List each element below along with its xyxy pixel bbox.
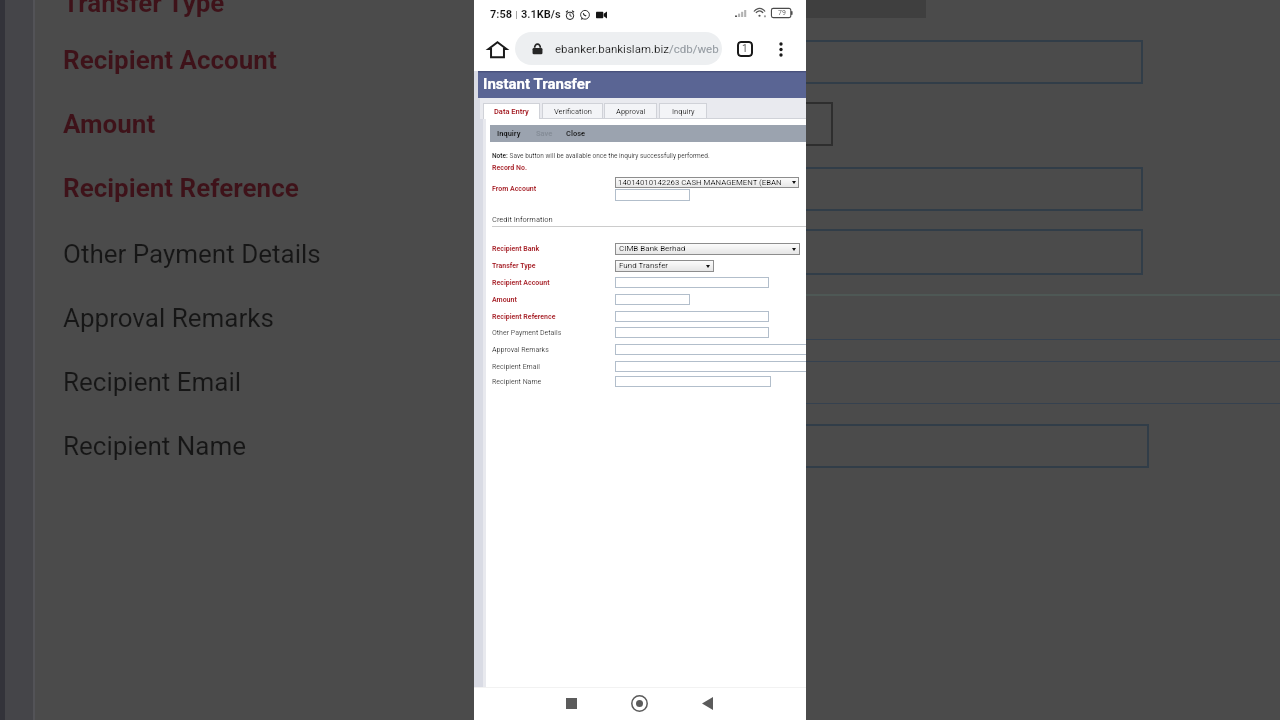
staticText: Recipient Reference [63, 173, 299, 203]
button[interactable]: Back [687, 687, 728, 720]
staticText: Approval Remarks [63, 303, 274, 333]
button[interactable]: Verification [542, 103, 603, 119]
staticText: Recipient Account [492, 279, 550, 287]
button[interactable] [615, 361, 806, 372]
staticText: Fund Transfer [619, 261, 669, 270]
button[interactable]: Inquiry [659, 103, 707, 119]
staticText: Recipient Account [63, 45, 277, 75]
button[interactable]: Recents [551, 687, 592, 720]
staticText: Approval [616, 107, 646, 116]
staticText: Save button will be available once the i… [508, 152, 710, 160]
staticText: /cdb/web [669, 42, 719, 55]
staticText: Inquiry [672, 107, 695, 116]
button[interactable] [615, 294, 690, 305]
staticText: Recipient Bank [492, 245, 540, 253]
button[interactable]: Save [536, 129, 553, 138]
button[interactable]: Home [482, 34, 512, 64]
staticText: Recipient Email [492, 363, 540, 371]
button[interactable] [615, 327, 769, 338]
staticText: 1 [742, 43, 748, 55]
button[interactable]: CIMB Bank Berhad [615, 243, 800, 255]
staticText: Note: [492, 152, 508, 160]
staticText: Other Payment Details [492, 329, 562, 337]
button[interactable]: ebanker.bankislam.biz [515, 32, 722, 65]
button[interactable]: Home [619, 687, 660, 720]
staticText: ebanker.bankislam.biz [555, 42, 669, 55]
staticText: Save [536, 129, 553, 138]
staticText: 14014010142263 CASH MANAGEMENT (EBAN [618, 178, 782, 187]
staticText: Data Entry [494, 107, 529, 116]
staticText: 7:58 [490, 8, 513, 21]
button[interactable] [615, 344, 806, 355]
button[interactable]: Approval [604, 103, 657, 119]
staticText: 3.1KB/s [521, 8, 561, 21]
button[interactable] [615, 277, 769, 288]
button[interactable]: Data Entry [483, 103, 540, 119]
button[interactable] [615, 311, 769, 322]
staticText: 79 [778, 9, 786, 17]
staticText: Recipient Email [63, 367, 242, 397]
staticText: From Account [492, 185, 537, 193]
staticText: Other Payment Details [63, 239, 321, 269]
staticText: Transfer Type [492, 262, 536, 270]
staticText: Close [566, 129, 586, 138]
staticText: Amount [63, 109, 156, 139]
staticText: Recipient Name [492, 378, 542, 386]
button[interactable]: Close [566, 129, 586, 138]
staticText: Instant Transfer [483, 75, 591, 93]
staticText: Recipient Name [63, 431, 247, 461]
button[interactable] [615, 376, 771, 387]
staticText: Credit Information [492, 215, 553, 224]
staticText: Amount [492, 296, 517, 304]
staticText: Approval Remarks [492, 346, 549, 354]
button[interactable] [615, 189, 690, 201]
staticText: Recipient Reference [492, 313, 556, 321]
staticText: CIMB Bank Berhad [619, 244, 686, 253]
button[interactable]: Inquiry [497, 129, 521, 138]
staticText: Inquiry [497, 129, 521, 138]
button[interactable]: Tabs [730, 34, 760, 64]
button[interactable]: Fund Transfer [615, 260, 714, 272]
staticText: Record No. [492, 164, 527, 172]
button[interactable]: More options [766, 34, 796, 64]
button[interactable]: 14014010142263 CASH MANAGEMENT (EBAN [615, 177, 799, 188]
staticText: Transfer Type [63, 0, 225, 18]
staticText: Verification [554, 107, 592, 116]
staticText: | [513, 9, 521, 20]
